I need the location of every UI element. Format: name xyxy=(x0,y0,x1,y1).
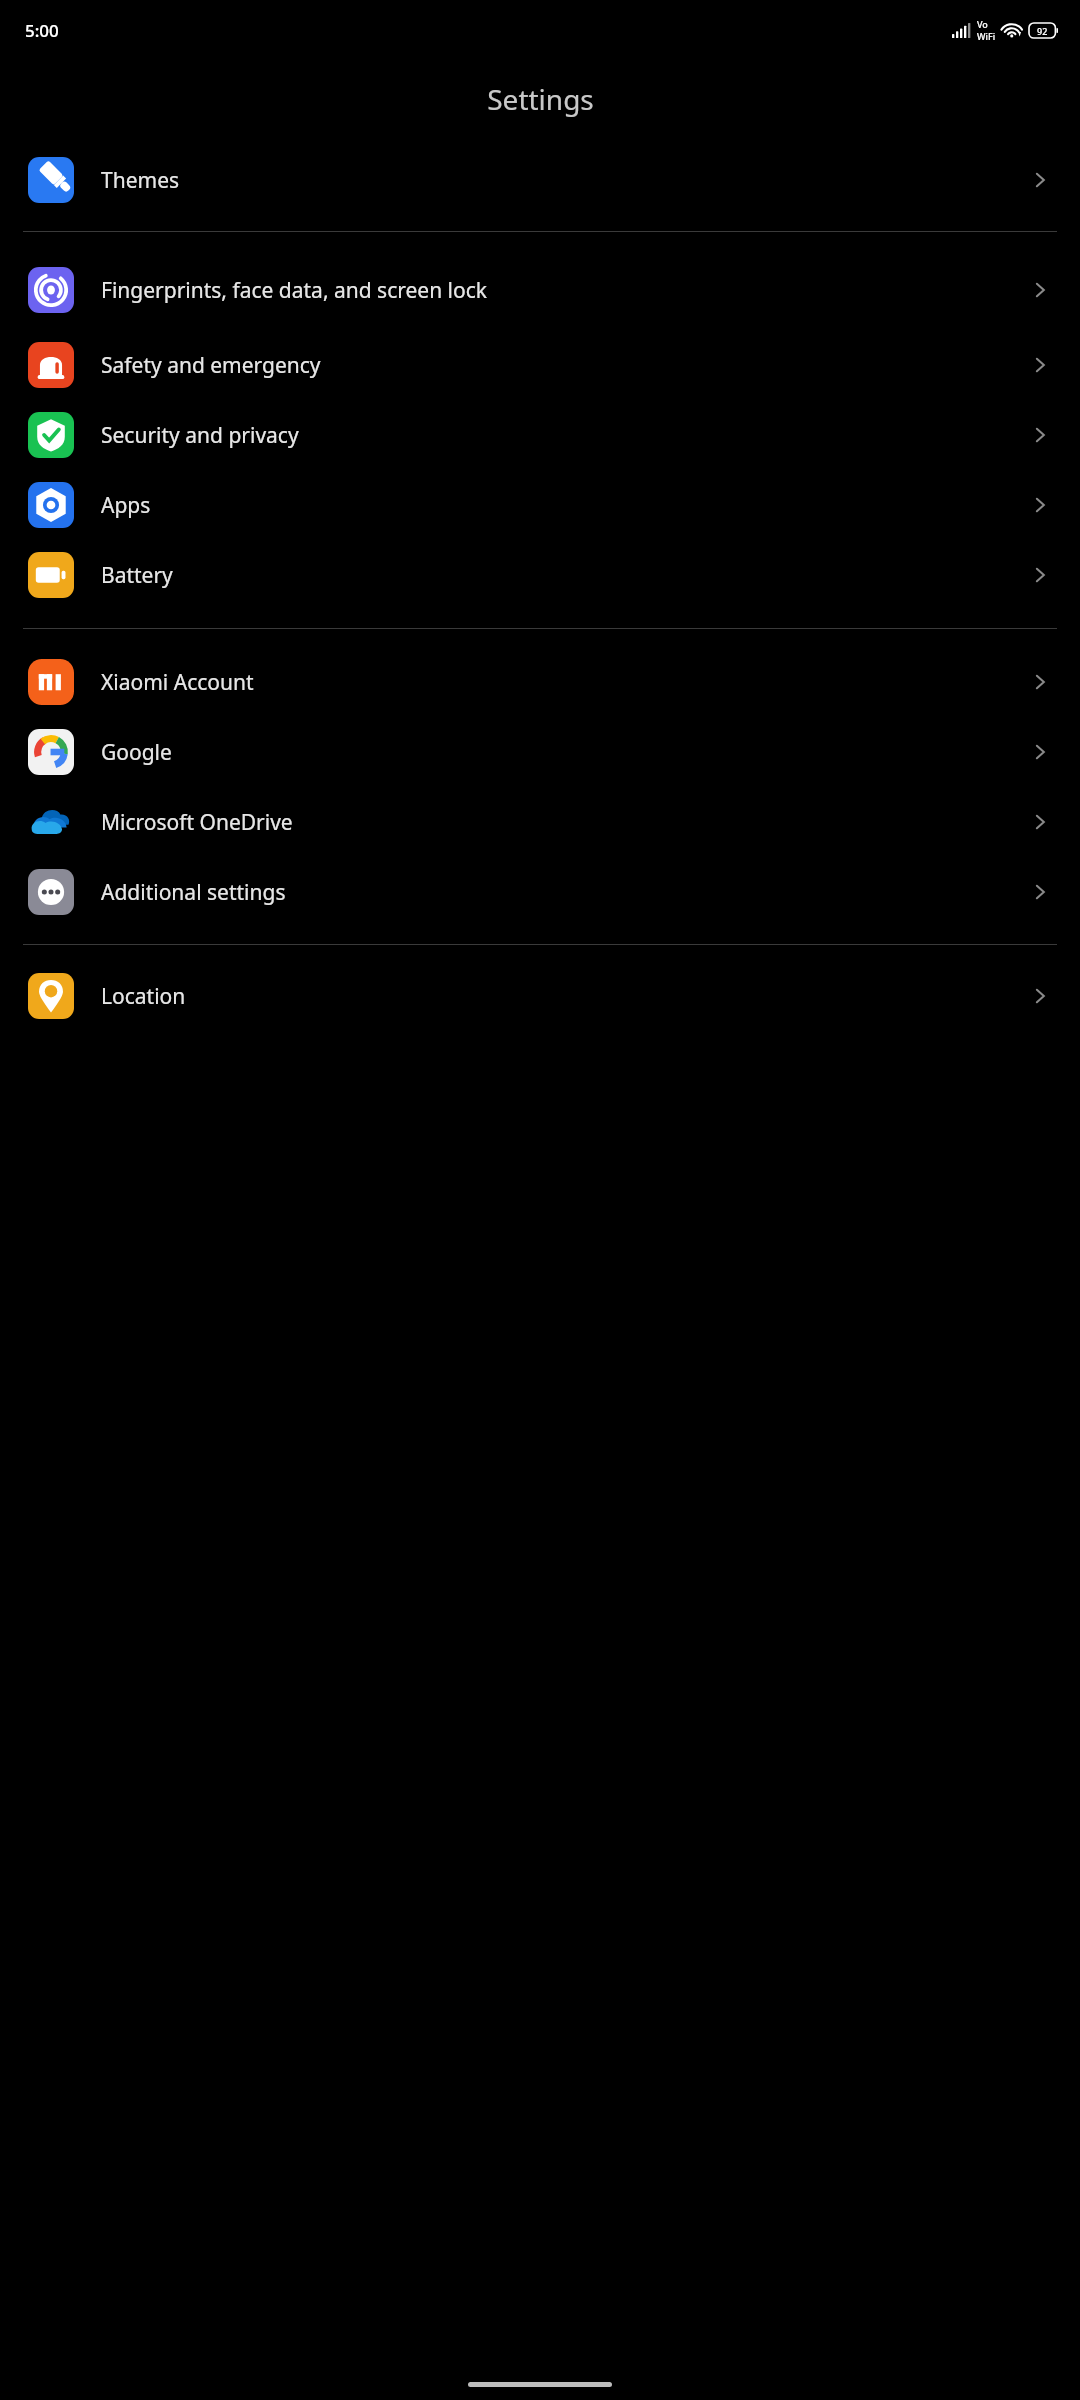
staticText: Microsoft OneDrive xyxy=(101,808,1016,837)
staticText: Apps xyxy=(101,491,1016,520)
staticText: Battery xyxy=(101,561,1016,590)
staticText: Vo xyxy=(977,18,988,30)
staticText: 5:00 xyxy=(25,19,59,42)
button[interactable]: Battery xyxy=(0,540,1080,610)
button[interactable]: Apps xyxy=(0,470,1080,540)
button[interactable]: Additional settings xyxy=(0,857,1080,927)
staticText: Google xyxy=(101,738,1016,767)
button[interactable]: Fingerprints, face data, and screen lock xyxy=(0,252,1080,328)
button[interactable]: Themes xyxy=(0,146,1080,214)
button[interactable]: Location xyxy=(0,961,1080,1031)
staticText: Settings xyxy=(487,80,594,118)
staticText: Fingerprints, face data, and screen lock xyxy=(101,276,1016,305)
button[interactable]: Microsoft OneDrive xyxy=(0,787,1080,857)
staticText: Themes xyxy=(101,166,1016,195)
staticText: Additional settings xyxy=(101,878,1016,907)
staticText: WiFi xyxy=(977,30,996,42)
button[interactable]: Security and privacy xyxy=(0,400,1080,470)
button[interactable]: Xiaomi Account xyxy=(0,647,1080,717)
staticText: 92 xyxy=(1037,25,1048,37)
button[interactable]: Google xyxy=(0,717,1080,787)
staticText: Safety and emergency xyxy=(101,351,1016,380)
staticText: Xiaomi Account xyxy=(101,668,1016,697)
staticText: Security and privacy xyxy=(101,421,1016,450)
staticText: Location xyxy=(101,982,1016,1011)
button[interactable]: Safety and emergency xyxy=(0,330,1080,400)
